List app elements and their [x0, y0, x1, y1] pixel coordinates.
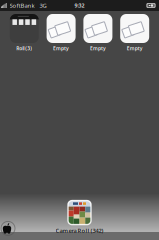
- button[interactable]: Home: [1, 221, 15, 235]
- staticText: Empty: [90, 45, 106, 52]
- staticText: 9:32: [74, 2, 84, 9]
- button[interactable]: Camera Roll (342): [55, 201, 103, 234]
- button[interactable]: Empty: [120, 14, 149, 52]
- staticText: 3G: [40, 1, 47, 9]
- button[interactable]: Empty: [83, 14, 112, 52]
- button[interactable]: Empty: [47, 14, 76, 52]
- staticText: Camera Roll (342): [55, 227, 103, 234]
- staticText: Empty: [53, 45, 69, 52]
- button[interactable]: Roll (3): [10, 14, 39, 52]
- staticText: Empty: [127, 45, 143, 52]
- staticText: SoftBank: [10, 1, 35, 9]
- staticText: Roll (3): [16, 45, 32, 52]
